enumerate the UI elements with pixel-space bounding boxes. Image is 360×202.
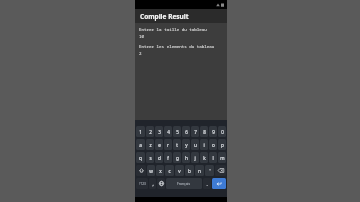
button[interactable]: Entrer la taille du tableau — [135, 23, 227, 120]
button[interactable]: Backspace — [215, 165, 226, 176]
staticText: w — [149, 168, 153, 174]
button[interactable]: ' — [205, 165, 214, 176]
staticText: g — [176, 155, 179, 161]
button[interactable]: h — [182, 152, 190, 163]
staticText: Compile Result — [140, 12, 189, 21]
button[interactable]: Français — [166, 178, 202, 189]
button[interactable]: 3 — [155, 126, 163, 137]
button[interactable]: n — [195, 165, 204, 176]
button[interactable]: 2 — [146, 126, 154, 137]
button[interactable]: k — [200, 152, 208, 163]
button[interactable]: Compile Result — [135, 9, 227, 23]
staticText: a — [139, 142, 142, 148]
staticText: f — [167, 155, 169, 161]
button[interactable]: 0 — [218, 126, 226, 137]
button[interactable]: u — [191, 139, 199, 150]
button[interactable]: , — [149, 178, 156, 189]
staticText: 0 — [221, 129, 224, 135]
staticText: j — [194, 155, 196, 161]
button[interactable]: b — [185, 165, 194, 176]
button[interactable]: 5 — [173, 126, 181, 137]
button[interactable]: Enter — [212, 178, 226, 189]
button[interactable]: r — [164, 139, 172, 150]
staticText: z — [149, 142, 152, 148]
button[interactable]: . — [203, 178, 211, 189]
staticText: ' — [209, 168, 211, 174]
button[interactable]: m — [218, 152, 226, 163]
button[interactable]: a — [136, 139, 145, 150]
staticText: i — [203, 142, 205, 148]
staticText: d — [158, 155, 161, 161]
button[interactable]: e — [155, 139, 163, 150]
staticText: 6 — [185, 129, 188, 135]
staticText: 1 — [139, 129, 142, 135]
staticText: Français — [177, 181, 191, 186]
button[interactable]: f — [164, 152, 172, 163]
button[interactable]: v — [175, 165, 184, 176]
staticText: q — [139, 155, 142, 161]
staticText: n — [198, 168, 201, 174]
button[interactable]: 1 — [136, 126, 145, 137]
button[interactable]: x — [156, 165, 164, 176]
button[interactable]: j — [191, 152, 199, 163]
button[interactable]: t — [173, 139, 181, 150]
staticText: 8 — [203, 129, 206, 135]
button[interactable]: d — [155, 152, 163, 163]
staticText: m — [220, 155, 225, 161]
staticText: ?123 — [139, 182, 146, 186]
button[interactable]: c — [165, 165, 174, 176]
button[interactable]: q — [136, 152, 145, 163]
staticText: 2 — [139, 51, 142, 57]
staticText: t — [176, 142, 178, 148]
staticText: p — [221, 142, 224, 148]
staticText: c — [168, 168, 171, 174]
button[interactable]: i — [200, 139, 208, 150]
staticText: 4 — [167, 129, 170, 135]
staticText: r — [167, 142, 169, 148]
button[interactable]: Change language — [157, 178, 165, 189]
button[interactable]: s — [146, 152, 154, 163]
staticText: o — [212, 142, 215, 148]
button[interactable]: l — [209, 152, 217, 163]
staticText: 3 — [158, 129, 161, 135]
button[interactable]: Shift — [136, 165, 146, 176]
staticText: s — [149, 155, 152, 161]
staticText: 7 — [194, 129, 197, 135]
staticText: l — [212, 155, 214, 161]
staticText: 10 — [139, 34, 145, 40]
button[interactable]: 6 — [182, 126, 190, 137]
staticText: x — [159, 168, 162, 174]
button[interactable]: z — [146, 139, 154, 150]
staticText: , — [152, 181, 154, 187]
staticText: v — [178, 168, 181, 174]
button[interactable]: w — [147, 165, 155, 176]
button[interactable]: o — [209, 139, 217, 150]
staticText: Entrer les elements du tableau — [139, 44, 215, 50]
button[interactable]: p — [218, 139, 226, 150]
button[interactable]: g — [173, 152, 181, 163]
button[interactable]: y — [182, 139, 190, 150]
staticText: b — [188, 168, 191, 174]
button[interactable]: 8 — [200, 126, 208, 137]
staticText: Entrer la taille du tableau — [139, 27, 207, 33]
staticText: . — [206, 181, 208, 187]
staticText: u — [194, 142, 197, 148]
staticText: 2 — [149, 129, 152, 135]
staticText: 9 — [212, 129, 215, 135]
staticText: h — [185, 155, 188, 161]
button[interactable]: ?123 — [136, 178, 148, 189]
staticText: 5 — [176, 129, 179, 135]
staticText: e — [158, 142, 161, 148]
staticText: k — [203, 155, 206, 161]
button[interactable]: 9 — [209, 126, 217, 137]
button[interactable]: 7 — [191, 126, 199, 137]
button[interactable]: 4 — [164, 126, 172, 137]
staticText: y — [185, 142, 188, 148]
